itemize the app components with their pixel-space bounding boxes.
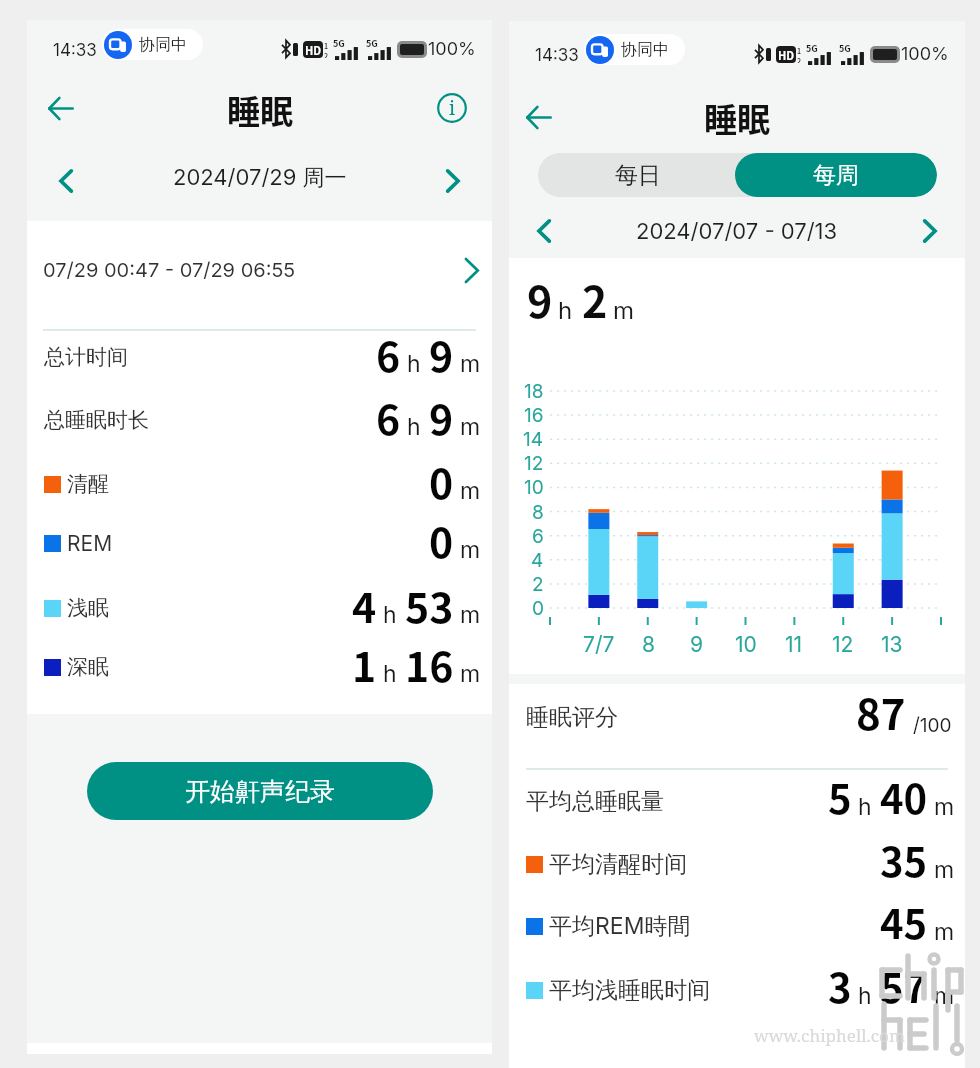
staticText: 6 xyxy=(376,324,401,383)
staticText: 协同中 xyxy=(621,40,669,60)
staticText: h xyxy=(383,601,397,629)
staticText: 6 xyxy=(376,387,401,446)
staticText: 1 xyxy=(352,634,377,693)
staticText: 53 xyxy=(405,575,454,634)
staticText: HD xyxy=(305,42,322,58)
staticText: 5G xyxy=(806,42,818,55)
staticText: 87 xyxy=(856,681,906,742)
staticText: 平均REM時間 xyxy=(549,912,691,941)
button[interactable]: Previous week xyxy=(520,207,568,255)
staticText: 8 xyxy=(642,632,655,657)
staticText: 平均浅睡眠时间 xyxy=(549,976,710,1005)
button[interactable]: Previous day xyxy=(42,157,90,205)
staticText: 45 xyxy=(880,893,928,951)
staticText: 浅眠 xyxy=(67,595,109,621)
staticText: 睡眠 xyxy=(227,86,293,134)
staticText: 每周 xyxy=(813,161,859,190)
button[interactable]: Back xyxy=(514,92,564,142)
staticText: 14:33 xyxy=(535,45,579,66)
staticText: 18 xyxy=(524,380,544,403)
staticText: m xyxy=(460,413,481,441)
button[interactable]: Info xyxy=(428,84,476,132)
staticText: 平均总睡眠量 xyxy=(526,787,664,816)
staticText: 3 xyxy=(828,957,852,1015)
staticText: REM xyxy=(67,531,113,556)
staticText: 1 xyxy=(324,41,329,51)
button[interactable]: Next week xyxy=(906,207,954,255)
staticText: 开始鼾声纪录 xyxy=(185,776,335,807)
staticText: 总睡眠时长 xyxy=(44,407,149,433)
staticText: 睡眠评分 xyxy=(526,703,618,732)
staticText: 16 xyxy=(405,634,454,693)
staticText: 2024/07/07 - 07/13 xyxy=(636,218,838,245)
staticText: 9 xyxy=(690,632,704,657)
staticText: 12 xyxy=(832,632,854,657)
button[interactable]: 07/29 00:47 - 07/29 06:55 xyxy=(27,241,492,299)
staticText: 2 xyxy=(532,573,544,596)
staticText: m xyxy=(934,793,955,821)
staticText: h xyxy=(407,350,421,378)
staticText: 9 xyxy=(429,387,454,446)
staticText: m xyxy=(934,982,955,1010)
staticText: 清醒 xyxy=(67,471,109,497)
staticText: 2024/07/29 周一 xyxy=(173,164,347,192)
staticText: 每日 xyxy=(615,161,661,190)
staticText: 0 xyxy=(429,510,454,569)
button[interactable]: Next day xyxy=(429,157,477,205)
staticText: 10 xyxy=(524,476,544,499)
staticText: 5G xyxy=(366,37,378,50)
staticText: 深眠 xyxy=(67,654,109,680)
staticText: 6 xyxy=(532,525,544,548)
staticText: 2 xyxy=(324,51,329,58)
staticText: 4 xyxy=(352,575,377,634)
staticText: 0 xyxy=(429,451,454,510)
staticText: 总计时间 xyxy=(44,344,128,370)
staticText: 0 xyxy=(532,597,544,620)
staticText: 14 xyxy=(523,428,544,451)
staticText: 14:33 xyxy=(53,40,97,61)
staticText: 07/29 00:47 - 07/29 06:55 xyxy=(43,258,296,282)
staticText: h xyxy=(858,982,872,1010)
button[interactable]: 开始鼾声纪录 xyxy=(87,762,433,820)
staticText: 13 xyxy=(881,632,903,657)
staticText: 4 xyxy=(531,549,544,572)
staticText: 12 xyxy=(524,452,544,475)
staticText: h xyxy=(407,413,421,441)
staticText: h xyxy=(858,793,872,821)
staticText: m xyxy=(613,296,635,325)
staticText: 平均清醒时间 xyxy=(549,850,687,879)
button[interactable]: 每周 xyxy=(735,153,937,197)
staticText: 2 xyxy=(582,268,608,330)
staticText: www.chiphell.com xyxy=(754,1024,905,1047)
staticText: 11 xyxy=(785,632,803,657)
staticText: m xyxy=(460,601,481,629)
staticText: /100 xyxy=(913,714,952,737)
staticText: 100% xyxy=(428,38,476,60)
staticText: 35 xyxy=(880,831,928,889)
button[interactable]: Back xyxy=(36,83,86,133)
button[interactable]: 每日 xyxy=(538,153,738,197)
staticText: 7/7 xyxy=(583,632,615,657)
staticText: 5 xyxy=(828,768,852,826)
staticText: m xyxy=(460,660,481,688)
staticText: 5G xyxy=(839,42,851,55)
staticText: 9 xyxy=(429,324,454,383)
staticText: 5G xyxy=(333,37,345,50)
staticText: 协同中 xyxy=(139,35,187,55)
staticText: m xyxy=(934,918,955,946)
staticText: 1 xyxy=(797,46,802,56)
staticText: 9 xyxy=(527,268,553,330)
staticText: m xyxy=(460,536,481,564)
staticText: 2 xyxy=(797,56,802,63)
staticText: 8 xyxy=(532,501,544,524)
staticText: HD xyxy=(778,47,795,63)
staticText: 100% xyxy=(901,43,949,65)
staticText: 16 xyxy=(524,404,544,427)
staticText: 40 xyxy=(880,768,928,826)
staticText: m xyxy=(460,477,481,505)
staticText: 57 xyxy=(880,957,928,1015)
staticText: m xyxy=(934,856,955,884)
staticText: m xyxy=(460,350,481,378)
staticText: h xyxy=(383,660,397,688)
staticText: i xyxy=(449,95,456,121)
